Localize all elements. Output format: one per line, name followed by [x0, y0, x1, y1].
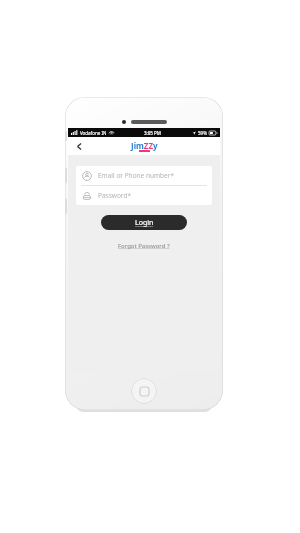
staticText: Email or Phone number* — [98, 171, 174, 180]
button[interactable]: Back — [72, 139, 86, 153]
staticText: Vodafone IN — [80, 130, 107, 136]
staticText: 3:05 PM — [144, 130, 161, 136]
staticText: 59% — [198, 130, 207, 136]
staticText: Login — [135, 218, 154, 228]
button[interactable]: Email or Phone number* — [76, 166, 212, 185]
button[interactable]: Forgot Password ? — [114, 240, 174, 252]
button[interactable]: Password* — [76, 186, 212, 205]
staticText: JimZZy — [131, 140, 158, 151]
button[interactable]: Login — [101, 215, 187, 230]
staticText: Password* — [98, 191, 131, 200]
staticText: Forgot Password ? — [118, 242, 170, 250]
